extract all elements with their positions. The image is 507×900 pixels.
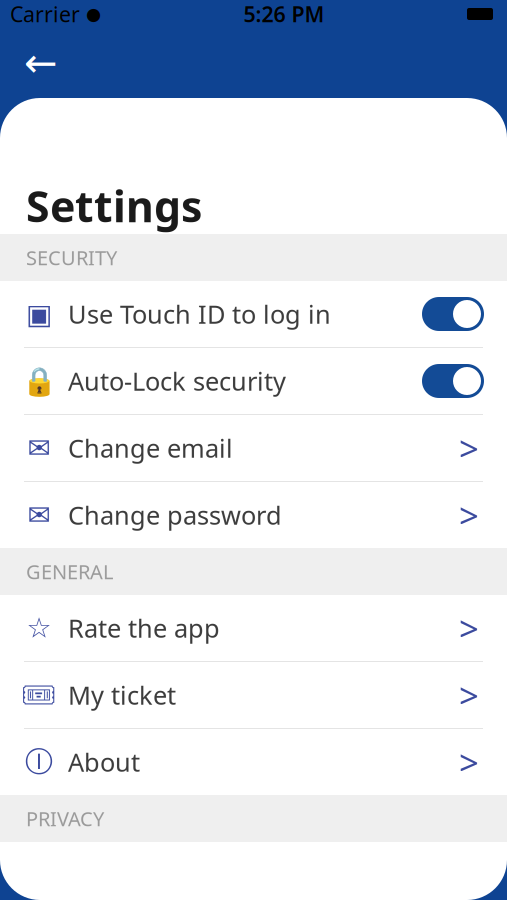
staticText: Carrier bbox=[10, 0, 80, 28]
staticText: GENERAL bbox=[26, 558, 113, 585]
staticText: Change email bbox=[68, 431, 233, 465]
staticText: Settings bbox=[26, 177, 202, 234]
button[interactable]: Ⓘ bbox=[0, 729, 507, 795]
staticText: > bbox=[459, 605, 479, 651]
staticText: 5:26 PM bbox=[243, 0, 324, 28]
staticText: ✉ bbox=[27, 499, 50, 531]
staticText: 🎟 bbox=[21, 679, 57, 711]
staticText: My ticket bbox=[68, 678, 176, 712]
button[interactable]: ✉ bbox=[0, 482, 507, 548]
button[interactable]: 🔒 bbox=[0, 348, 507, 415]
staticText: ▣ bbox=[26, 298, 52, 330]
staticText: 🔒 bbox=[21, 365, 56, 397]
staticText: Change password bbox=[68, 498, 282, 532]
staticText: SECURITY bbox=[26, 244, 117, 271]
staticText: Ⓘ bbox=[25, 745, 53, 779]
staticText: > bbox=[459, 492, 479, 538]
staticText: > bbox=[459, 425, 479, 471]
button[interactable]: ✉ bbox=[0, 415, 507, 482]
staticText: ✉ bbox=[27, 432, 50, 464]
staticText: > bbox=[459, 739, 479, 785]
staticText: ← bbox=[24, 40, 58, 86]
staticText: Use Touch ID to log in bbox=[68, 297, 331, 331]
staticText: Rate the app bbox=[68, 611, 220, 645]
button[interactable]: ☆ bbox=[0, 595, 507, 662]
button[interactable]: 🎟 bbox=[0, 662, 507, 729]
staticText: PRIVACY bbox=[26, 805, 104, 832]
staticText: About bbox=[68, 745, 140, 779]
staticText: ☆ bbox=[26, 612, 51, 644]
button[interactable]: Back bbox=[18, 40, 64, 86]
staticText: > bbox=[459, 672, 479, 718]
staticText: ● bbox=[86, 4, 101, 24]
staticText: Auto-Lock security bbox=[68, 364, 286, 398]
button[interactable]: ▣ bbox=[0, 281, 507, 348]
